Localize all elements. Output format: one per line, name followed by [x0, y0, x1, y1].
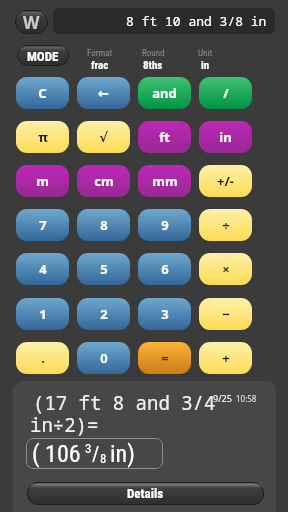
staticText: frac [91, 59, 109, 72]
button[interactable]: 8 [77, 209, 130, 241]
staticText: . [41, 349, 45, 367]
staticText: / [92, 442, 100, 465]
staticText: ( 106 [32, 440, 81, 468]
button[interactable]: 1 [16, 298, 69, 330]
staticText: Format [87, 48, 113, 59]
staticText: C [38, 84, 47, 102]
staticText: 7 [39, 216, 47, 234]
staticText: / [223, 84, 229, 102]
staticText: + [222, 349, 230, 367]
button[interactable]: Details [27, 482, 264, 505]
staticText: 8 ft 10 and 3/8 in [126, 12, 267, 30]
button[interactable]: m [16, 165, 69, 197]
button[interactable]: 8 ft 10 and 3/8 in [53, 8, 275, 34]
button[interactable]: 7 [16, 209, 69, 241]
staticText: 8 [100, 216, 108, 234]
staticText: 3 [161, 305, 169, 323]
staticText: × [222, 260, 230, 278]
button[interactable]: 3 [138, 298, 191, 330]
staticText: 9 [161, 216, 169, 234]
button[interactable]: +/- [199, 165, 252, 197]
staticText: ft [159, 128, 170, 146]
staticText: ← [98, 86, 109, 101]
staticText: in÷2)= [30, 412, 99, 438]
button[interactable]: 9 [138, 209, 191, 241]
staticText: 4 [39, 260, 47, 278]
button[interactable]: 2 [77, 298, 130, 330]
staticText: 6 [161, 260, 169, 278]
button[interactable]: App menu [15, 10, 48, 34]
button[interactable]: ÷ [199, 209, 252, 241]
staticText: cm [94, 172, 114, 190]
staticText: 8ths [143, 59, 163, 72]
button[interactable]: ft [138, 121, 191, 153]
button[interactable]: 0 [77, 342, 130, 374]
button[interactable]: 6 [138, 253, 191, 285]
staticText: (17 ft 8 and 3/4 [33, 390, 216, 416]
staticText: Round [142, 48, 165, 59]
button[interactable]: 4 [16, 253, 69, 285]
staticText: √ [99, 130, 108, 145]
button[interactable]: π [16, 121, 69, 153]
staticText: 3 [85, 441, 92, 456]
button[interactable]: 5 [77, 253, 130, 285]
staticText: in) [110, 440, 135, 468]
button[interactable]: / [199, 77, 252, 109]
button[interactable]: C [16, 77, 69, 109]
staticText: in [201, 59, 210, 72]
staticText: = [161, 349, 169, 367]
staticText: MODE [27, 49, 59, 64]
staticText: Details [127, 486, 164, 501]
staticText: W [23, 11, 40, 34]
staticText: 9/25 [213, 392, 232, 404]
button[interactable]: + [199, 342, 252, 374]
staticText: − [222, 305, 230, 323]
staticText: ÷ [222, 216, 230, 234]
staticText: m [36, 172, 49, 190]
staticText: mm [152, 172, 178, 190]
button[interactable]: mm [138, 165, 191, 197]
staticText: in [219, 128, 232, 146]
staticText: and [152, 84, 177, 102]
staticText: 5 [100, 260, 108, 278]
button[interactable]: √ [77, 121, 130, 153]
button[interactable]: = [138, 342, 191, 374]
staticText: 1 [39, 305, 47, 323]
button[interactable]: . [16, 342, 69, 374]
button[interactable]: in [199, 121, 252, 153]
staticText: π [38, 128, 48, 146]
staticText: 2 [100, 305, 108, 323]
staticText: 8 [100, 451, 107, 466]
button[interactable]: ← [77, 77, 130, 109]
button[interactable]: MODE [17, 45, 69, 66]
button[interactable]: − [199, 298, 252, 330]
staticText: +/- [217, 172, 234, 190]
button[interactable]: × [199, 253, 252, 285]
staticText: 0 [100, 349, 108, 367]
button[interactable]: and [138, 77, 191, 109]
staticText: Unit [198, 48, 213, 59]
button[interactable]: cm [77, 165, 130, 197]
staticText: 10:58 [236, 393, 257, 404]
